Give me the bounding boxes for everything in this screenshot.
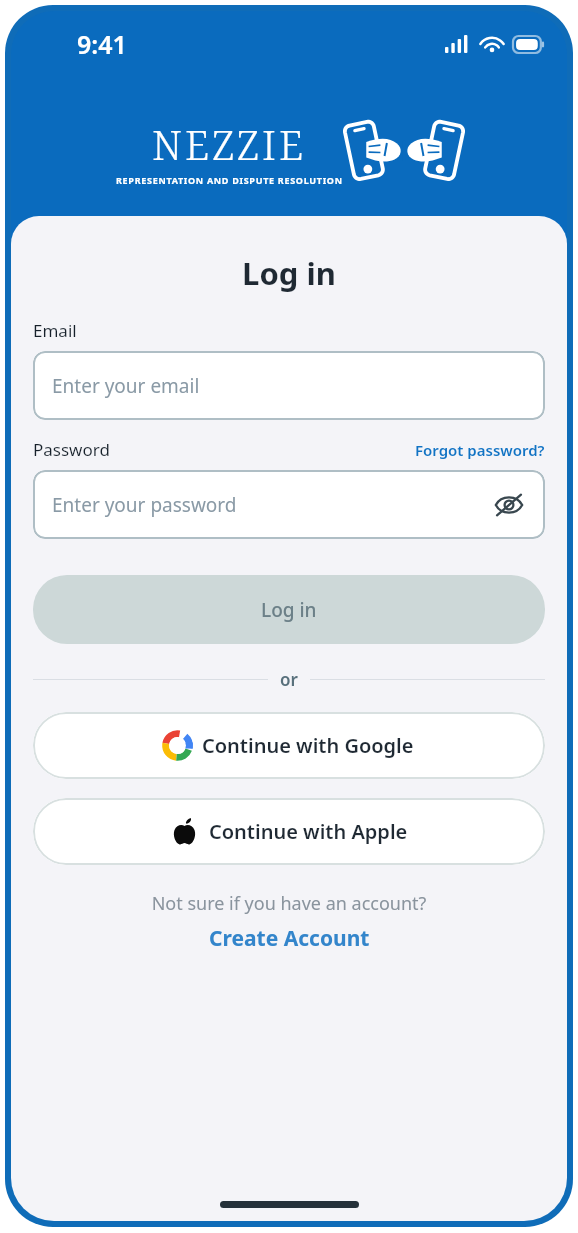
staticText: Log in [33, 252, 545, 294]
staticText: Log in [261, 597, 317, 623]
button[interactable]: Enter your password [33, 470, 545, 539]
staticText: Forgot password? [415, 440, 545, 460]
button[interactable]: Continue with Google [33, 712, 545, 779]
staticText: Continue with Google [202, 732, 414, 759]
staticText: Password [33, 438, 110, 461]
staticText: 9:41 [77, 27, 127, 61]
staticText: or [280, 668, 298, 691]
button[interactable]: Enter your email [33, 351, 545, 420]
staticText: REPRESENTATION AND DISPUTE RESOLUTION [116, 174, 343, 186]
button[interactable]: Log in [33, 575, 545, 644]
staticText: Create Account [209, 924, 370, 953]
staticText: Enter your email [52, 373, 200, 399]
button[interactable]: Show password [492, 488, 526, 522]
button[interactable]: Create Account [33, 924, 545, 953]
staticText: Email [33, 319, 77, 342]
button[interactable]: Forgot password? [415, 440, 545, 460]
staticText: Enter your password [52, 492, 237, 518]
button[interactable]: Continue with Apple [33, 798, 545, 865]
staticText: NEZZIE [152, 117, 307, 171]
staticText: Not sure if you have an account? [33, 891, 545, 916]
staticText: Continue with Apple [209, 818, 408, 845]
